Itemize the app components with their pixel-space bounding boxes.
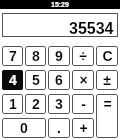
staticText: 3 — [55, 96, 63, 112]
button[interactable]: Divide — [72, 46, 94, 66]
button[interactable]: 4 — [2, 70, 23, 90]
staticText: 8 — [32, 48, 40, 64]
staticText: 5 — [32, 72, 40, 88]
staticText: 7 — [9, 48, 17, 64]
button[interactable]: 2 — [25, 94, 46, 114]
button[interactable]: C — [96, 46, 118, 66]
button[interactable]: Plus — [72, 118, 94, 138]
button[interactable]: 9 — [48, 46, 70, 66]
button[interactable]: 1 — [2, 94, 23, 114]
staticText: . — [57, 120, 61, 136]
staticText: 9 — [55, 48, 63, 64]
button[interactable]: 5 — [25, 70, 46, 90]
button[interactable]: Plus minus — [96, 70, 118, 90]
staticText: 15:29 — [51, 1, 69, 9]
button[interactable]: 3 — [48, 94, 70, 114]
button[interactable]: Minus — [72, 94, 94, 114]
staticText: 6 — [55, 72, 63, 88]
staticText: + — [79, 120, 88, 136]
staticText: ± — [103, 72, 111, 88]
button[interactable]: 8 — [25, 46, 46, 66]
button[interactable]: 7 — [2, 46, 23, 66]
staticText: C — [102, 48, 113, 64]
staticText: = — [103, 96, 112, 112]
button[interactable]: Multiply — [72, 70, 94, 90]
staticText: ÷ — [79, 48, 87, 64]
button[interactable]: Equals — [96, 94, 118, 138]
staticText: 2 — [32, 96, 40, 112]
button[interactable]: 6 — [48, 70, 70, 90]
button[interactable]: Decimal point — [48, 118, 70, 138]
staticText: 1 — [9, 96, 17, 112]
button[interactable]: 0 — [2, 118, 46, 138]
staticText: 4 — [9, 72, 17, 88]
staticText: 0 — [20, 120, 28, 136]
button[interactable]: Calculator display — [2, 13, 118, 37]
staticText: × — [79, 72, 88, 88]
staticText: 35534 — [69, 20, 114, 38]
staticText: - — [81, 96, 86, 112]
